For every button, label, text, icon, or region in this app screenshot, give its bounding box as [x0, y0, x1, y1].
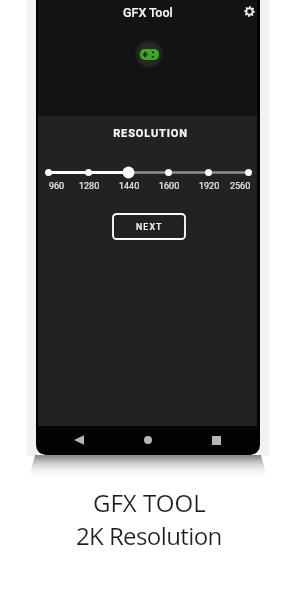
staticText: 2K Resolution	[76, 519, 222, 552]
button[interactable]: NEXT	[113, 214, 185, 239]
button[interactable]: Settings	[239, 1, 259, 21]
button[interactable]: 1280	[69, 180, 109, 192]
staticText: 960	[49, 181, 65, 192]
button[interactable]: Recent apps	[202, 426, 230, 454]
button[interactable]: Home	[134, 426, 162, 454]
staticText: NEXT	[136, 222, 163, 232]
staticText: 1440	[119, 181, 140, 192]
staticText: 2560	[230, 181, 251, 192]
staticText: 1920	[199, 181, 220, 192]
button[interactable]: 1920	[189, 180, 229, 192]
staticText: GFX Tool	[123, 5, 173, 20]
staticText: GFX TOOL	[93, 486, 206, 519]
staticText: 1280	[79, 181, 100, 192]
button[interactable]: 2560	[211, 180, 251, 192]
staticText: 1600	[159, 181, 180, 192]
button[interactable]: Back	[65, 426, 93, 454]
staticText: RESOLUTION	[41, 127, 260, 140]
button[interactable]: 960	[49, 180, 89, 192]
button[interactable]: 1600	[149, 180, 189, 192]
button[interactable]: 1440	[109, 180, 149, 192]
